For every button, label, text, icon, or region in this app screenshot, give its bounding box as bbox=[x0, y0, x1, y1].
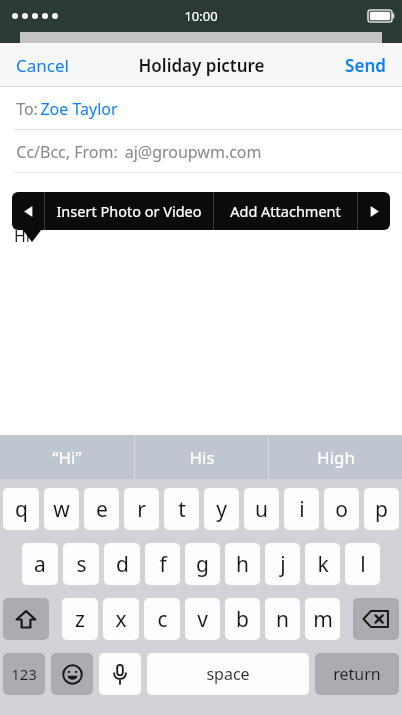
staticText: k bbox=[317, 550, 329, 579]
staticText: i bbox=[299, 495, 305, 524]
button[interactable]: x bbox=[103, 598, 139, 640]
button[interactable]: c bbox=[144, 598, 180, 640]
button[interactable]: o bbox=[324, 488, 359, 530]
staticText: aj@groupwm.com bbox=[120, 141, 262, 163]
button[interactable]: h bbox=[225, 543, 260, 585]
button[interactable]: t bbox=[164, 488, 199, 530]
staticText: s bbox=[76, 550, 87, 579]
button[interactable]: His bbox=[135, 435, 268, 479]
button[interactable]: s bbox=[63, 543, 99, 585]
staticText: Add Attachment bbox=[230, 201, 341, 221]
button[interactable]: l bbox=[345, 543, 380, 585]
staticText: d bbox=[116, 550, 129, 579]
staticText: High bbox=[317, 446, 355, 469]
button[interactable]: Add Attachment bbox=[214, 192, 357, 230]
button[interactable]: Backspace bbox=[353, 598, 399, 640]
staticText: x bbox=[115, 605, 127, 634]
staticText: Holiday picture bbox=[138, 54, 265, 77]
staticText: “Hi” bbox=[52, 446, 82, 469]
button[interactable]: v bbox=[185, 598, 220, 640]
staticText: z bbox=[75, 605, 85, 634]
staticText: t bbox=[178, 495, 186, 524]
button[interactable]: q bbox=[3, 488, 39, 530]
button[interactable]: To: bbox=[0, 87, 402, 130]
staticText: Insert Photo or Video bbox=[56, 201, 202, 221]
button[interactable]: r bbox=[124, 488, 159, 530]
button[interactable]: High bbox=[269, 435, 402, 479]
staticText: r bbox=[137, 495, 146, 524]
staticText: j bbox=[280, 550, 286, 579]
staticText: a bbox=[34, 550, 46, 579]
staticText: m bbox=[313, 605, 333, 634]
button[interactable]: Send bbox=[329, 44, 402, 87]
button[interactable]: z bbox=[62, 598, 98, 640]
button[interactable]: n bbox=[265, 598, 300, 640]
button[interactable]: return bbox=[315, 653, 399, 695]
staticText: 123 bbox=[11, 664, 37, 684]
staticText: n bbox=[276, 605, 289, 634]
button[interactable]: k bbox=[305, 543, 340, 585]
button[interactable]: i bbox=[284, 488, 319, 530]
button[interactable]: w bbox=[44, 488, 79, 530]
button[interactable]: p bbox=[364, 488, 399, 530]
button[interactable]: Cancel bbox=[0, 44, 85, 87]
button[interactable]: 123 bbox=[3, 653, 45, 695]
staticText: 10:00 bbox=[184, 7, 218, 25]
staticText: e bbox=[96, 495, 108, 524]
button[interactable]: e bbox=[84, 488, 119, 530]
staticText: y bbox=[216, 495, 227, 524]
staticText: l bbox=[360, 550, 366, 579]
staticText: space bbox=[206, 663, 250, 685]
staticText: f bbox=[159, 550, 167, 579]
button[interactable]: Shift bbox=[3, 598, 49, 640]
button[interactable]: space bbox=[147, 653, 309, 695]
staticText: Hi bbox=[14, 225, 30, 247]
staticText: u bbox=[255, 495, 268, 524]
button[interactable]: Cc/Bcc, From: bbox=[0, 130, 402, 173]
staticText: w bbox=[53, 495, 70, 524]
button[interactable]: Next bbox=[358, 192, 390, 230]
staticText: o bbox=[335, 495, 348, 524]
staticText: g bbox=[196, 550, 209, 579]
button[interactable]: Previous bbox=[12, 192, 44, 230]
button[interactable]: Dictate bbox=[99, 653, 141, 695]
staticText: v bbox=[197, 605, 208, 634]
button[interactable]: “Hi” bbox=[0, 435, 134, 479]
button[interactable]: j bbox=[265, 543, 300, 585]
staticText: Cancel bbox=[16, 54, 69, 77]
staticText: h bbox=[236, 550, 249, 579]
button[interactable]: d bbox=[104, 543, 140, 585]
staticText: Send bbox=[345, 54, 386, 77]
button[interactable]: a bbox=[22, 543, 58, 585]
staticText: c bbox=[157, 605, 168, 634]
staticText: To: bbox=[14, 98, 40, 120]
button[interactable]: m bbox=[305, 598, 340, 640]
staticText: return bbox=[333, 663, 381, 685]
button[interactable]: u bbox=[244, 488, 279, 530]
button[interactable]: f bbox=[145, 543, 180, 585]
staticText: b bbox=[236, 605, 249, 634]
button[interactable]: b bbox=[225, 598, 260, 640]
staticText: Cc/Bcc, From: bbox=[14, 141, 120, 163]
button[interactable]: Emoji bbox=[51, 653, 93, 695]
button[interactable]: Insert Photo or Video bbox=[45, 192, 213, 230]
staticText: His bbox=[189, 446, 215, 469]
staticText: Zoe Taylor bbox=[40, 98, 118, 120]
button[interactable]: g bbox=[185, 543, 220, 585]
button[interactable]: y bbox=[204, 488, 239, 530]
staticText: q bbox=[15, 495, 28, 524]
staticText: p bbox=[375, 495, 388, 524]
